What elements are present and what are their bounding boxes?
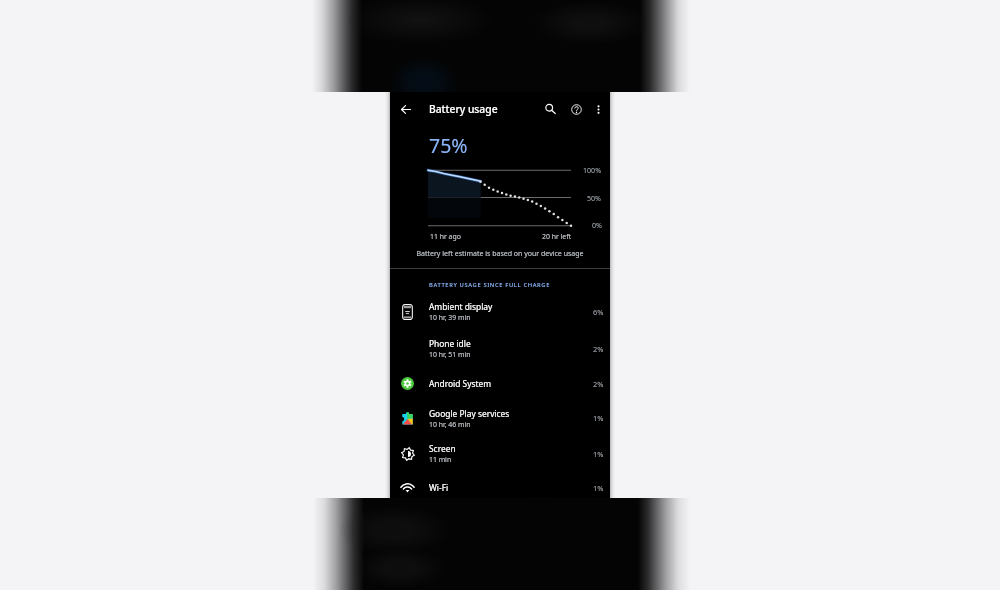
button[interactable]: Search	[538, 97, 562, 121]
staticText: 11 hr ago	[430, 232, 461, 241]
staticText: 20 hr left	[542, 232, 572, 241]
staticText: Android System	[429, 378, 492, 389]
staticText: Ambient display	[429, 301, 493, 312]
staticText: 10 hr, 46 min	[429, 420, 471, 429]
staticText: 2%	[593, 379, 604, 389]
staticText: 75%	[429, 132, 468, 159]
button[interactable]: Google Play services	[390, 400, 610, 436]
staticText: 11 min	[429, 455, 452, 464]
staticText: 1%	[593, 483, 604, 493]
staticText: BATTERY USAGE SINCE FULL CHARGE	[429, 281, 551, 289]
staticText: Battery left estimate is based on your d…	[390, 249, 610, 259]
staticText: Screen	[429, 443, 456, 454]
button[interactable]: Help	[564, 97, 588, 121]
staticText: Wi-Fi	[429, 482, 449, 493]
staticText: 1%	[593, 449, 604, 459]
staticText: Google Play services	[429, 408, 510, 419]
staticText: 100%	[583, 165, 602, 175]
staticText: Phone idle	[429, 338, 471, 349]
staticText: 10 hr, 51 min	[429, 350, 471, 359]
button[interactable]: Phone idle	[390, 330, 610, 367]
button[interactable]: More options	[586, 97, 610, 121]
button[interactable]: Screen	[390, 436, 610, 471]
button[interactable]: Wi-Fi	[390, 471, 610, 504]
button[interactable]: Ambient display	[390, 293, 610, 330]
staticText: 10 hr, 39 min	[429, 313, 471, 322]
staticText: 0%	[592, 220, 602, 230]
button[interactable]: Android System	[390, 367, 610, 400]
staticText: 6%	[593, 307, 604, 317]
staticText: Battery usage	[429, 102, 498, 116]
button[interactable]: Back	[394, 97, 418, 121]
staticText: 50%	[587, 193, 602, 203]
staticText: 2%	[593, 344, 604, 354]
staticText: 1%	[593, 413, 604, 423]
